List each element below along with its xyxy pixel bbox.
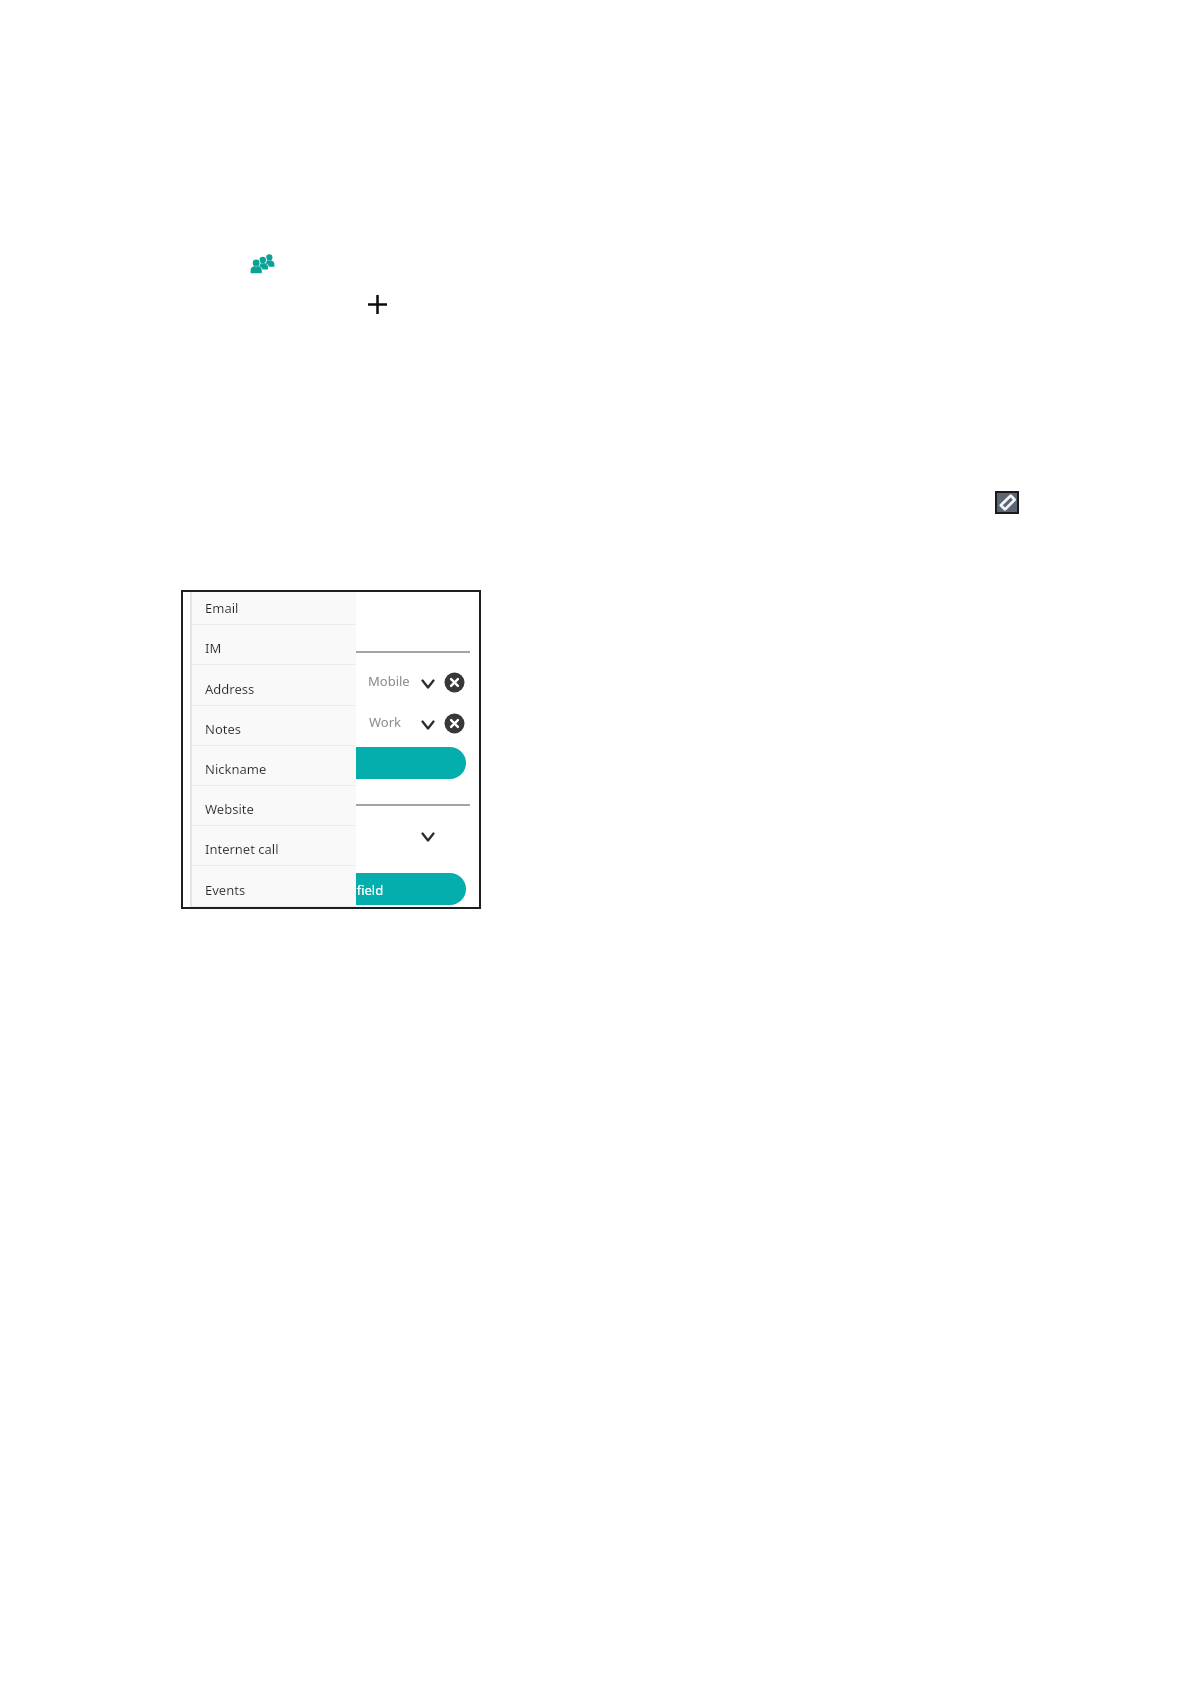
button[interactable]: Notes	[192, 706, 356, 746]
staticText: Website	[205, 800, 254, 818]
button[interactable]: Email	[192, 585, 356, 625]
button[interactable]: Work	[361, 705, 470, 741]
button[interactable]: Contacts	[249, 252, 276, 274]
button[interactable]: Phone number field	[283, 747, 466, 779]
button[interactable]: Expand	[413, 822, 443, 852]
button[interactable]: Add another field	[283, 873, 466, 905]
button[interactable]: Edit	[995, 491, 1019, 514]
button[interactable]: Address	[192, 666, 356, 706]
staticText: Email	[205, 599, 239, 617]
button[interactable]: Nickname	[192, 746, 356, 786]
staticText: Notes	[205, 720, 241, 738]
button[interactable]: Events	[192, 867, 356, 907]
button[interactable]: Add	[366, 293, 389, 316]
staticText: Mobile	[368, 672, 410, 690]
button[interactable]: Mobile	[361, 664, 470, 700]
staticText: Nickname	[205, 760, 267, 778]
staticText: Add another field	[283, 881, 384, 899]
button[interactable]: Internet call	[192, 826, 356, 866]
staticText: Address	[205, 680, 255, 698]
staticText: Events	[205, 881, 246, 899]
button[interactable]: IM	[192, 625, 356, 665]
button[interactable]: Website	[192, 786, 356, 826]
staticText: Internet call	[205, 840, 279, 858]
staticText: Work	[369, 713, 402, 731]
staticText: IM	[205, 639, 222, 657]
